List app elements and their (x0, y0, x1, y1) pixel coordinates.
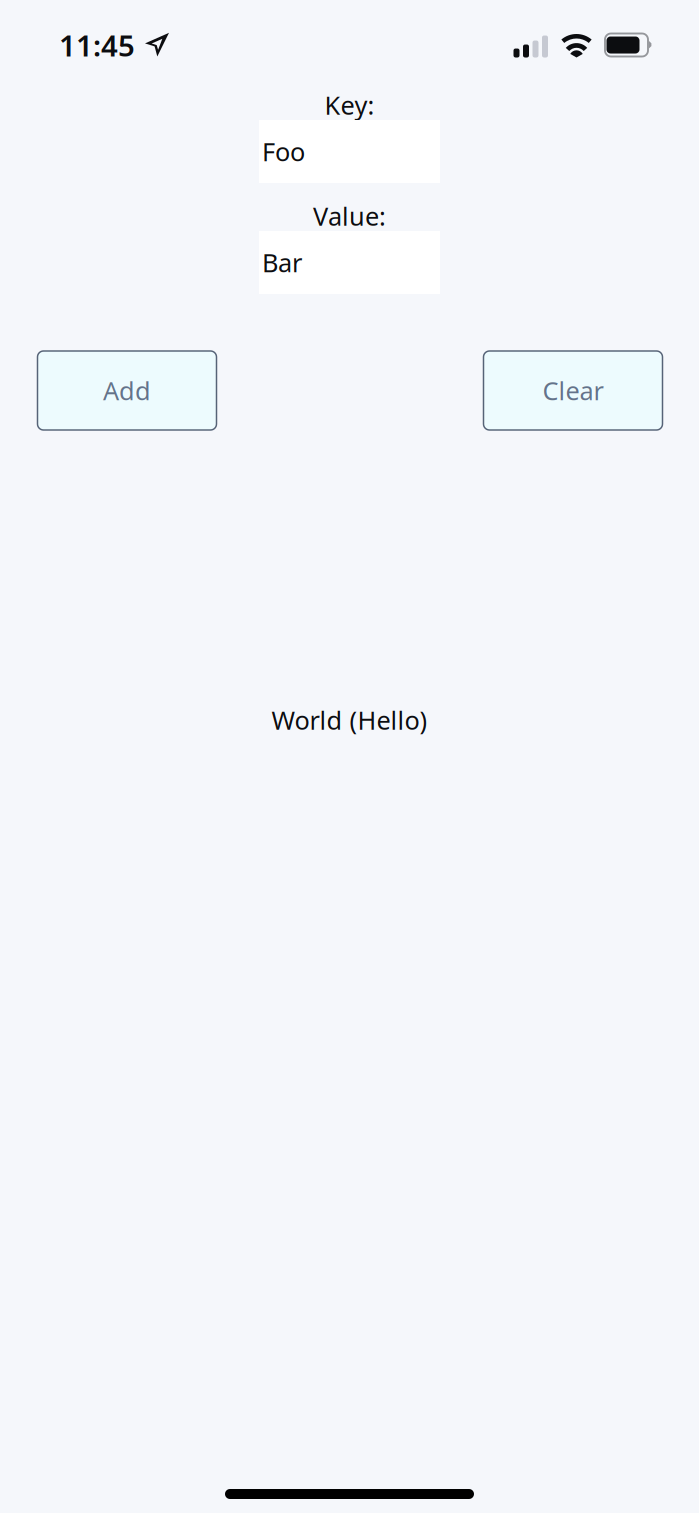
button[interactable]: Key text field (259, 120, 440, 183)
staticText: World (Hello) (271, 703, 427, 737)
staticText: Bar (262, 246, 302, 279)
staticText: Clear (542, 374, 603, 407)
staticText: Value: (313, 199, 386, 233)
button[interactable]: Add (37, 351, 216, 430)
staticText: Foo (262, 135, 305, 168)
staticText: Add (103, 374, 151, 407)
button[interactable]: Clear (483, 351, 662, 430)
button[interactable]: Value text field (259, 231, 440, 294)
staticText: 11:45 (59, 25, 135, 64)
staticText: Key: (324, 88, 374, 122)
